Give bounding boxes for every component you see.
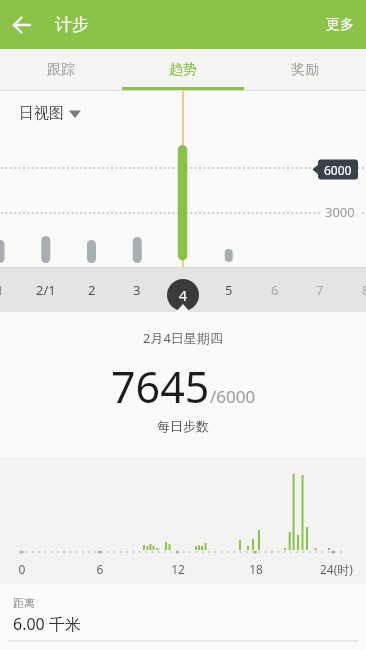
staticText: 6: [90, 561, 110, 577]
staticText: 8: [362, 281, 366, 299]
button[interactable]: 日视图: [19, 104, 81, 123]
staticText: 2/1: [36, 281, 56, 299]
staticText: 6: [271, 281, 279, 299]
button[interactable]: 5: [206, 267, 252, 312]
staticText: 1: [0, 281, 4, 299]
staticText: 5: [225, 281, 233, 299]
staticText: 12: [168, 561, 188, 577]
button[interactable]: 奖励: [244, 49, 366, 91]
staticText: 18: [246, 561, 266, 577]
staticText: 7645: [111, 357, 210, 416]
staticText: 6000: [324, 162, 352, 178]
staticText: 趋势: [169, 61, 197, 79]
staticText: 2: [88, 281, 96, 299]
button[interactable]: 更多: [314, 0, 366, 49]
button[interactable]: 3: [114, 267, 160, 312]
button[interactable]: 距离: [0, 584, 366, 650]
button[interactable]: 8: [343, 267, 366, 312]
staticText: 跟踪: [47, 61, 75, 79]
staticText: 4: [179, 286, 188, 305]
button[interactable]: 2/1: [23, 267, 69, 312]
button[interactable]: 跟踪: [0, 49, 122, 91]
staticText: 每日步数: [157, 418, 209, 434]
staticText: 7: [316, 281, 324, 299]
button[interactable]: 2: [69, 267, 115, 312]
staticText: 24(时): [320, 561, 353, 577]
staticText: /6000: [210, 385, 256, 408]
staticText: 计步: [55, 14, 89, 35]
staticText: 奖励: [291, 61, 319, 79]
button[interactable]: 4: [167, 279, 199, 311]
staticText: 3000: [325, 203, 355, 221]
staticText: 日视图: [19, 104, 64, 123]
button[interactable]: 1: [0, 267, 23, 312]
button[interactable]: [0, 0, 44, 49]
staticText: 6.00 千米: [13, 613, 81, 635]
staticText: 更多: [326, 16, 354, 34]
staticText: 2月4日星期四: [143, 329, 223, 347]
staticText: 0: [12, 561, 32, 577]
button[interactable]: 6: [252, 267, 298, 312]
button[interactable]: 趋势: [122, 49, 244, 91]
staticText: 3: [133, 281, 141, 299]
button[interactable]: 7: [297, 267, 343, 312]
staticText: 距离: [13, 596, 35, 610]
